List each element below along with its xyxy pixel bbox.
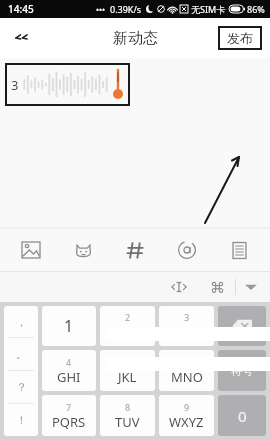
staticText: 符号 — [231, 364, 253, 378]
button[interactable]: 9 — [159, 395, 214, 436]
button[interactable]: 5 — [100, 350, 155, 391]
staticText: ， — [16, 315, 27, 329]
staticText: MNO — [171, 368, 203, 386]
button[interactable]: List — [222, 233, 256, 267]
button[interactable]: 3 — [159, 306, 214, 346]
button[interactable]: Back — [6, 21, 40, 55]
staticText: 1 — [64, 315, 74, 337]
staticText: 3 — [184, 311, 190, 323]
staticText: 发布 — [227, 30, 253, 46]
button[interactable]: ！ — [4, 404, 38, 436]
staticText: 0.39K/s — [110, 3, 142, 15]
button[interactable]: ？ — [4, 371, 38, 403]
button[interactable]: 1 — [42, 306, 96, 346]
button[interactable]: 发布 — [218, 26, 262, 50]
button[interactable]: 2 — [100, 306, 155, 346]
button[interactable]: 3 — [5, 63, 130, 106]
staticText: 2 — [125, 311, 131, 323]
staticText: PQRS — [52, 413, 86, 431]
staticText: GHI — [57, 368, 81, 386]
button[interactable]: 7 — [42, 395, 96, 436]
button[interactable]: 符号 — [218, 350, 266, 391]
button[interactable]: Mention — [170, 233, 204, 267]
staticText: ⌘ — [210, 279, 225, 296]
staticText: 3 — [11, 76, 19, 94]
button[interactable]: Hide keyboard — [236, 272, 266, 302]
button[interactable]: 6 — [159, 350, 214, 391]
button[interactable]: Backspace — [218, 306, 266, 346]
staticText: 86% — [247, 3, 265, 15]
staticText: 7 — [66, 401, 72, 413]
staticText: WXYZ — [169, 413, 204, 431]
button[interactable]: Keyboard settings — [203, 273, 231, 301]
staticText: 14:45 — [8, 2, 34, 16]
button[interactable]: 0 — [218, 395, 266, 436]
staticText: 无SIM卡 — [191, 3, 226, 15]
button[interactable]: Topic — [118, 233, 152, 267]
staticText: 4 — [66, 356, 72, 368]
staticText: 8 — [125, 401, 131, 413]
staticText: ！ — [16, 413, 27, 427]
staticText: TUV — [115, 413, 140, 431]
staticText: 新动态 — [113, 29, 158, 48]
staticText: ？ — [16, 380, 27, 394]
staticText: 9 — [184, 401, 190, 413]
button[interactable]: ， — [4, 306, 38, 337]
button[interactable]: Emoji — [66, 233, 100, 267]
button[interactable]: Move cursor — [165, 273, 193, 301]
button[interactable]: 4 — [42, 350, 96, 391]
button[interactable]: Add image — [14, 233, 48, 267]
staticText: 0 — [238, 406, 247, 426]
button[interactable]: 8 — [100, 395, 155, 436]
staticText: ••• — [96, 4, 106, 15]
staticText: 。 — [16, 347, 27, 361]
staticText: JKL — [118, 368, 137, 386]
button[interactable]: 。 — [4, 338, 38, 370]
